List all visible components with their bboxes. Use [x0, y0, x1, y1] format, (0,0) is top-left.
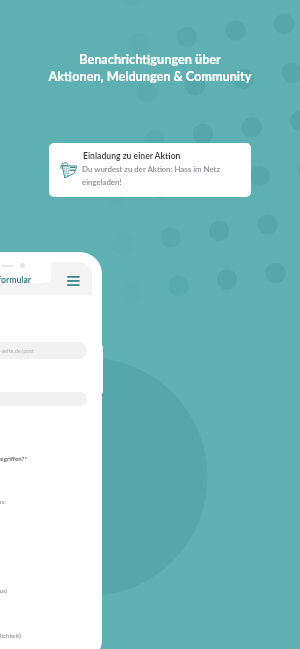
- button[interactable]: Einladung zu einer Aktion: [49, 143, 251, 197]
- staticText: Meldeformular: [0, 275, 31, 285]
- staticText: Einladung zu einer Aktion: [83, 151, 181, 161]
- staticText: Benachrichtigungen über Aktionen, Meldun…: [0, 51, 300, 84]
- staticText: Bitte wähle aus:: [0, 498, 6, 505]
- staticText: Wen oder was wurde angegriffen?*: [0, 455, 28, 462]
- staticText: Herkunft (z.B. Rassismus): [0, 587, 8, 594]
- staticText: Geschlecht (z.B. Frauenfeindlichkeit): [0, 632, 21, 639]
- staticText: Du wurdest zu der Aktion: Hass im Netz e…: [82, 164, 220, 186]
- staticText: iel-seite.de/post: [0, 347, 34, 354]
- button[interactable]: Menu: [66, 275, 81, 287]
